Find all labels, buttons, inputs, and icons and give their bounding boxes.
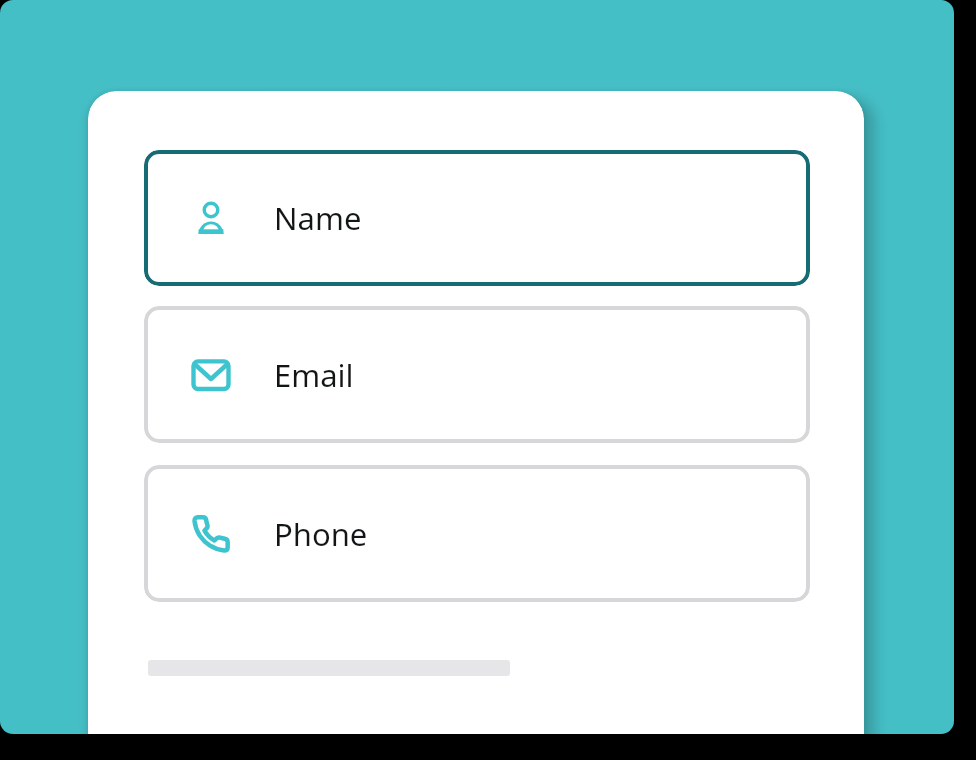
button[interactable]: Name xyxy=(144,150,810,286)
button[interactable]: Email xyxy=(144,306,810,443)
staticText: Phone xyxy=(274,513,368,555)
button[interactable]: Phone xyxy=(144,465,810,602)
staticText: Email xyxy=(274,354,354,396)
staticText: Name xyxy=(274,197,362,239)
